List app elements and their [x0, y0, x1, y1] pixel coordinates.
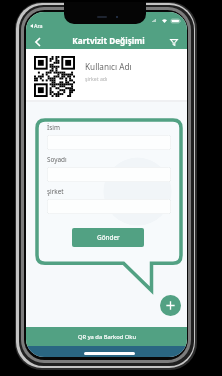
- staticText: Ara: [34, 22, 43, 29]
- button[interactable]: Gönder: [72, 228, 144, 247]
- staticText: şirket adı: [85, 75, 108, 82]
- staticText: İsim: [47, 123, 60, 132]
- staticText: şirket: [47, 187, 64, 196]
- button[interactable]: [47, 199, 171, 214]
- staticText: Soyadı: [47, 155, 67, 164]
- staticText: QR ya da Barkod Oku: [78, 333, 136, 341]
- button[interactable]: [47, 135, 171, 150]
- button[interactable]: [47, 167, 171, 182]
- staticText: Gönder: [97, 233, 120, 242]
- staticText: Kullanıcı Adı: [85, 61, 132, 72]
- button[interactable]: Filtre: [165, 33, 183, 51]
- button[interactable]: Ekle: [160, 295, 181, 316]
- button[interactable]: QR ya da Barkod Oku: [26, 327, 187, 346]
- button[interactable]: Geri: [28, 33, 46, 51]
- staticText: Kartvizit Değişimi: [30, 35, 187, 46]
